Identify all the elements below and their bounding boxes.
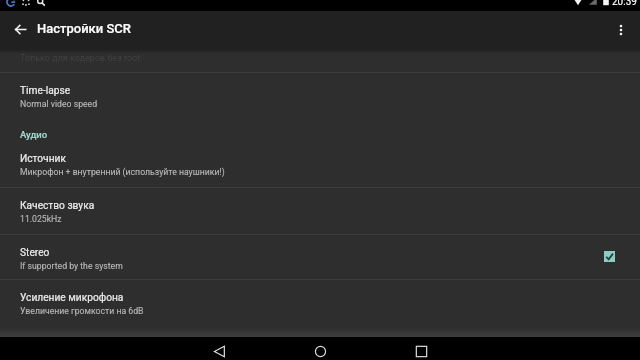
button[interactable]: Источник	[0, 140, 640, 187]
staticText: Normal video speed	[20, 99, 98, 109]
staticText: 20:39	[612, 0, 637, 7]
button[interactable]: Back	[199, 337, 239, 360]
staticText: Аудио	[20, 129, 48, 140]
button[interactable]: Time-lapse	[0, 72, 640, 119]
button[interactable]: Только для кодеров без root	[0, 49, 640, 72]
staticText: Увеличение громкости на 6dB	[20, 306, 144, 316]
button[interactable]: Recent apps	[401, 337, 441, 360]
button[interactable]: Усиление микрофона	[0, 279, 640, 326]
staticText: Качество звука	[20, 200, 95, 212]
button[interactable]: Качество звука	[0, 187, 640, 234]
staticText: Stereo	[20, 247, 50, 259]
staticText: Микрофон + внутренний (используйте наушн…	[20, 167, 225, 177]
staticText: If supported by the system	[20, 261, 123, 271]
button[interactable]: More options	[609, 18, 633, 42]
button[interactable]: Stereo	[0, 234, 640, 281]
button[interactable]: Toggle Stereo	[594, 242, 625, 270]
staticText: 11.025kHz	[20, 214, 62, 224]
staticText: Усиление микрофона	[20, 292, 124, 304]
button[interactable]: Navigate up	[9, 19, 32, 42]
staticText: Только для кодеров без root	[20, 53, 141, 64]
button[interactable]: Home	[300, 337, 340, 360]
staticText: Настройки SCR	[37, 21, 131, 36]
staticText: Time-lapse	[20, 85, 71, 97]
staticText: Источник	[20, 153, 66, 165]
